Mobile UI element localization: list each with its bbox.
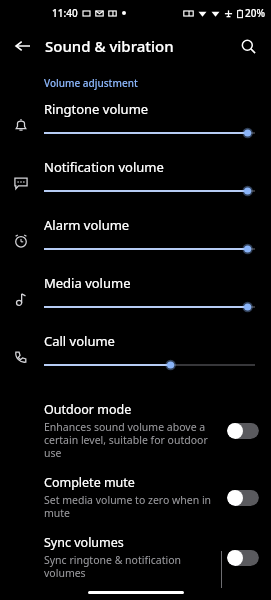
button[interactable]: Toggle [227, 422, 259, 439]
button[interactable]: Toggle [227, 489, 259, 506]
staticText: Outdoor mode [44, 401, 132, 418]
staticText: Sound & vibration [45, 36, 174, 56]
button[interactable]: Volume slider [44, 184, 258, 198]
button[interactable]: Sync volumes [0, 527, 271, 587]
button[interactable]: Toggle [227, 549, 259, 566]
button[interactable]: Volume slider [44, 242, 258, 256]
button[interactable]: Alarm volume [0, 212, 271, 270]
button[interactable]: Volume slider [44, 126, 258, 140]
button[interactable]: Ringtone volume [0, 96, 271, 154]
button[interactable]: Outdoor mode [0, 394, 271, 467]
button[interactable]: Volume slider [44, 358, 258, 372]
staticText: 20% [245, 6, 265, 20]
button[interactable]: Complete mute [0, 467, 271, 527]
staticText: Set media volume to zero when in mute [44, 493, 212, 520]
staticText: Alarm volume [44, 216, 130, 234]
staticText: Call volume [44, 332, 115, 350]
button[interactable]: Media volume [0, 270, 271, 328]
button[interactable]: Call volume [0, 328, 271, 386]
staticText: Enhances sound volume above a certain le… [44, 420, 219, 460]
staticText: 11:40 [52, 6, 78, 20]
staticText: Sync volumes [44, 534, 124, 551]
staticText: Notification volume [44, 158, 164, 176]
staticText: Volume adjustment [44, 76, 138, 90]
staticText: Media volume [44, 274, 131, 292]
staticText: Ringtone volume [44, 100, 149, 118]
button[interactable]: Notification volume [0, 154, 271, 212]
button[interactable]: Smart ringtone [0, 587, 271, 600]
button[interactable]: Back [8, 31, 38, 61]
button[interactable]: Volume slider [44, 300, 258, 314]
button[interactable]: Search [233, 31, 263, 61]
staticText: Sync ringtone & notification volumes [44, 553, 219, 580]
staticText: Complete mute [44, 474, 135, 491]
